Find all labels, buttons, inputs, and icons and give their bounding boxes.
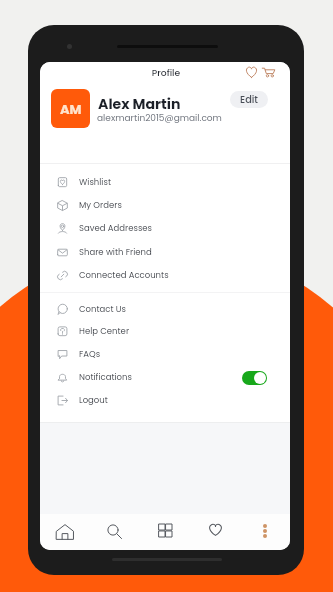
staticText: Help Center (79, 325, 130, 337)
staticText: Connected Accounts (79, 269, 169, 281)
button[interactable]: FAQs (40, 343, 290, 366)
button[interactable]: Search (90, 514, 140, 550)
button[interactable]: Wishlist (242, 63, 260, 81)
staticText: My Orders (79, 199, 122, 211)
staticText: Edit (240, 93, 259, 107)
staticText: Logout (79, 394, 108, 406)
button[interactable]: Categories (140, 514, 190, 550)
button[interactable]: More (240, 514, 290, 550)
staticText: Saved Addresses (79, 222, 153, 234)
staticText: Notifications (79, 371, 132, 383)
staticText: Profile (149, 66, 183, 79)
staticText: alexmartin2015@gmail.com (97, 112, 222, 125)
button[interactable]: Connected Accounts (40, 264, 290, 287)
staticText: Share with Friend (79, 246, 152, 258)
button[interactable]: Contact Us (40, 298, 290, 321)
button[interactable]: Help Center (40, 320, 290, 343)
staticText: AM (60, 100, 82, 118)
staticText: Alex Martin (98, 94, 181, 114)
button[interactable] (242, 371, 267, 385)
button[interactable]: Wishlist (40, 171, 290, 194)
staticText: Contact Us (79, 303, 126, 315)
button[interactable]: Notifications (40, 366, 290, 389)
button[interactable]: Cart (259, 63, 277, 81)
button[interactable]: My Orders (40, 194, 290, 217)
button[interactable]: Avatar (51, 89, 90, 128)
button[interactable]: Share with Friend (40, 241, 290, 264)
staticText: Wishlist (79, 176, 111, 188)
button[interactable]: Favourites (190, 514, 240, 550)
button[interactable]: Saved Addresses (40, 217, 290, 240)
button[interactable]: Home (40, 514, 90, 550)
button[interactable]: Logout (40, 389, 290, 412)
staticText: FAQs (79, 348, 101, 360)
button[interactable]: Edit (230, 91, 268, 108)
